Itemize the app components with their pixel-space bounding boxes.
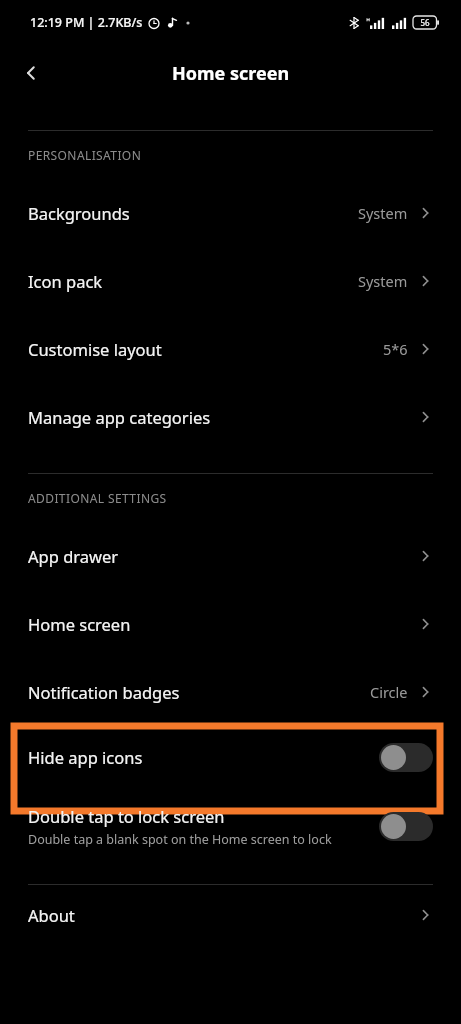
button[interactable]: Double tap to lock screen: [0, 794, 461, 858]
button[interactable]: [379, 812, 433, 841]
button[interactable]: Back: [12, 53, 52, 93]
staticText: Notification badges: [28, 681, 180, 703]
staticText: Hide app icons: [28, 746, 379, 768]
staticText: App drawer: [28, 545, 119, 567]
button[interactable]: Notification badges: [0, 658, 461, 726]
staticText: System: [358, 271, 408, 291]
button[interactable]: Manage app categories: [0, 383, 461, 451]
button[interactable]: [379, 743, 433, 772]
staticText: Double tap a blank spot on the Home scre…: [28, 831, 332, 848]
button[interactable]: App drawer: [0, 522, 461, 590]
staticText: Manage app categories: [28, 406, 211, 428]
staticText: System: [358, 203, 408, 223]
staticText: Home screen: [28, 613, 131, 635]
staticText: About: [28, 904, 75, 926]
staticText: Double tap to lock screen: [28, 805, 225, 827]
staticText: 12:19 PM | 2.7KB/s: [30, 14, 143, 31]
button[interactable]: About: [0, 885, 461, 945]
staticText: Home screen: [172, 61, 290, 86]
button[interactable]: Customise layout: [0, 315, 461, 383]
button[interactable]: Hide app icons: [28, 726, 433, 788]
staticText: Customise layout: [28, 338, 162, 360]
staticText: PERSONALISATION: [28, 147, 142, 163]
staticText: 56: [420, 17, 430, 28]
staticText: 5*6: [383, 339, 408, 359]
staticText: Circle: [370, 682, 408, 702]
button[interactable]: Icon pack: [0, 247, 461, 315]
staticText: Backgrounds: [28, 202, 130, 224]
button[interactable]: Home screen: [0, 590, 461, 658]
staticText: ADDITIONAL SETTINGS: [28, 490, 167, 506]
button[interactable]: Backgrounds: [0, 179, 461, 247]
staticText: Icon pack: [28, 270, 103, 292]
